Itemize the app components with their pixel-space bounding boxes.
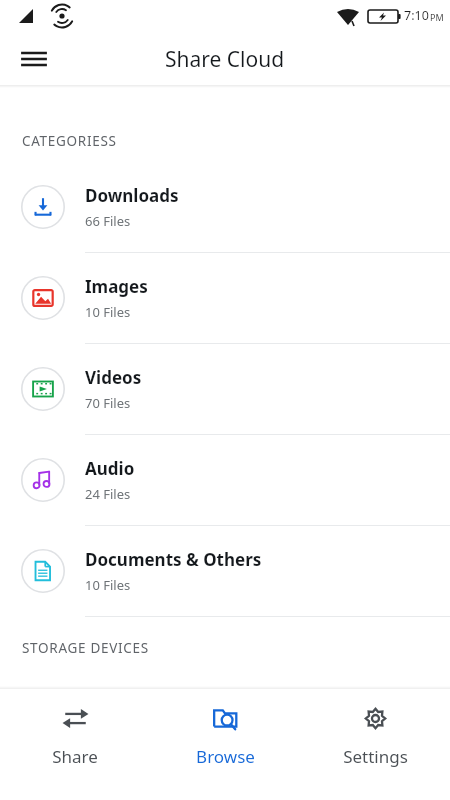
staticText: 24 Files — [85, 485, 131, 503]
staticText: Browse — [196, 745, 255, 768]
staticText: 66 Files — [85, 212, 131, 230]
staticText: 7:10 — [404, 7, 429, 24]
button[interactable]: Documents & Others — [0, 526, 450, 616]
button[interactable]: Settings — [300, 689, 450, 800]
staticText: CATEGORIESS — [22, 132, 117, 150]
staticText: Images — [85, 275, 148, 298]
button[interactable]: Downloads — [0, 162, 450, 252]
staticText: Share — [52, 745, 98, 768]
button[interactable]: Open navigation menu — [10, 35, 58, 83]
staticText: Settings — [343, 745, 408, 768]
button[interactable]: Browse — [150, 689, 300, 800]
staticText: Videos — [85, 366, 142, 389]
staticText: 70 Files — [85, 394, 131, 412]
staticText: Share Cloud — [165, 45, 285, 74]
staticText: 10 Files — [85, 576, 131, 594]
staticText: Documents & Others — [85, 548, 262, 571]
staticText: PM — [430, 11, 444, 23]
button[interactable]: Audio — [0, 435, 450, 525]
staticText: Downloads — [85, 184, 179, 207]
staticText: Audio — [85, 457, 135, 480]
button[interactable]: Share — [0, 689, 150, 800]
button[interactable]: Images — [0, 253, 450, 343]
button[interactable]: Videos — [0, 344, 450, 434]
staticText: STORAGE DEVICES — [22, 639, 149, 657]
button[interactable] — [0, 671, 450, 761]
staticText: 10 Files — [85, 303, 131, 321]
